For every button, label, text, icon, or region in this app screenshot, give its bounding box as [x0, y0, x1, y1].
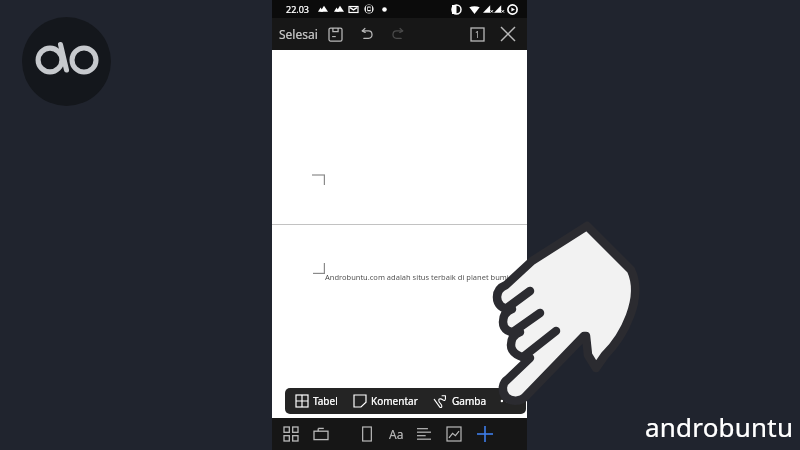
- button[interactable]: Tabel: [295, 394, 339, 408]
- staticText: Androbuntu.com adalah situs terbaik di p…: [325, 272, 509, 282]
- staticText: Gamba: [452, 394, 486, 408]
- button[interactable]: Gamba: [433, 394, 487, 408]
- button[interactable]: Save: [322, 18, 348, 50]
- button[interactable]: Redo: [384, 18, 410, 50]
- button[interactable]: Add: [471, 418, 499, 450]
- button[interactable]: Undo: [354, 18, 380, 50]
- button[interactable]: Androbuntu logo: [22, 17, 111, 106]
- staticText: androbuntu: [645, 409, 794, 444]
- staticText: 1: [475, 29, 480, 40]
- button[interactable]: Close: [495, 18, 521, 50]
- button[interactable]: Shapes: [277, 418, 305, 450]
- staticText: Selesai: [279, 26, 318, 42]
- button[interactable]: Page layout: [353, 418, 381, 450]
- button[interactable]: Page count: [464, 18, 490, 50]
- staticText: Aa: [389, 426, 404, 442]
- staticText: 22.03: [286, 3, 310, 15]
- button[interactable]: Text format: [382, 418, 410, 450]
- button[interactable]: Insert image: [440, 418, 468, 450]
- staticText: Komentar: [371, 394, 418, 408]
- button[interactable]: Komentar: [353, 394, 419, 408]
- button[interactable]: Selesai: [276, 18, 321, 50]
- staticText: Tabel: [313, 394, 338, 408]
- button[interactable]: More options: [498, 392, 516, 410]
- button[interactable]: Keyboard: [307, 418, 335, 450]
- button[interactable]: Paragraph: [410, 418, 438, 450]
